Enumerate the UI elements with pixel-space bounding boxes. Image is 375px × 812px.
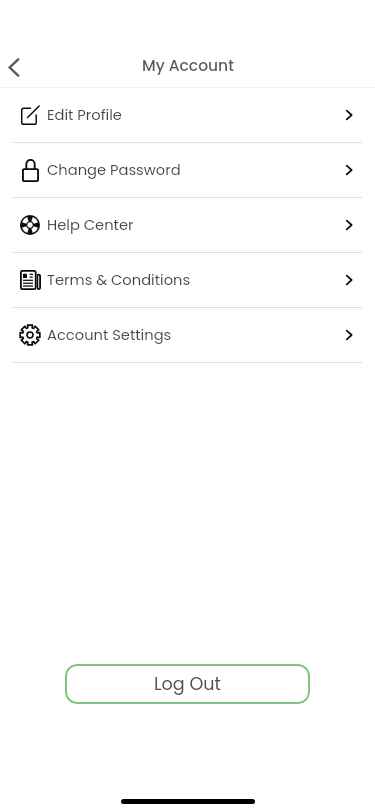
button[interactable]: Help Center (0, 198, 375, 252)
staticText: Help Center (47, 215, 134, 236)
staticText: Terms & Conditions (47, 270, 191, 291)
button[interactable]: Edit Profile (0, 88, 375, 142)
button[interactable]: Terms & Conditions (0, 253, 375, 307)
staticText: Change Password (47, 160, 181, 181)
button[interactable]: Log Out (65, 664, 310, 704)
button[interactable]: Change Password (0, 143, 375, 197)
button[interactable]: Back (0, 51, 33, 84)
staticText: Log Out (154, 672, 221, 697)
button[interactable]: Account Settings (0, 308, 375, 362)
staticText: Edit Profile (47, 105, 122, 126)
staticText: Account Settings (47, 325, 172, 346)
staticText: My Account (142, 55, 234, 77)
